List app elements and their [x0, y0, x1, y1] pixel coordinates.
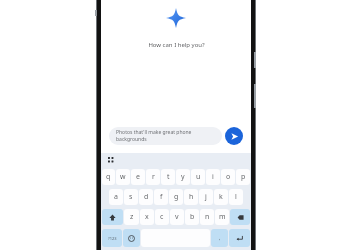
staticText: e	[136, 172, 140, 182]
button[interactable]: Keyboard tools	[106, 155, 117, 166]
staticText: x	[145, 212, 149, 222]
button[interactable]: b	[185, 209, 199, 225]
staticText: o	[226, 172, 231, 182]
staticText: z	[130, 212, 134, 222]
button[interactable]: ?123	[102, 229, 122, 247]
staticText: m	[219, 212, 226, 222]
staticText: ,	[219, 235, 221, 242]
button[interactable]: r	[146, 169, 160, 185]
staticText: s	[129, 192, 133, 202]
button[interactable]: Photos that'll make great phone backgrou…	[109, 127, 222, 145]
staticText: d	[144, 192, 149, 202]
button[interactable]: Shift	[102, 209, 123, 225]
button[interactable]: p	[236, 169, 250, 185]
button[interactable]: i	[206, 169, 220, 185]
staticText: h	[189, 192, 194, 202]
staticText: y	[181, 172, 185, 182]
button[interactable]: Emoji	[123, 229, 140, 247]
button[interactable]: g	[169, 189, 183, 205]
button[interactable]: n	[200, 209, 214, 225]
staticText: j	[205, 192, 207, 202]
staticText: b	[190, 212, 195, 222]
button[interactable]: e	[131, 169, 145, 185]
button[interactable]: f	[154, 189, 168, 205]
staticText: n	[205, 212, 210, 222]
button[interactable]: d	[139, 189, 153, 205]
staticText: u	[196, 172, 201, 182]
staticText: v	[175, 212, 179, 222]
staticText: p	[241, 172, 246, 182]
button[interactable]: z	[124, 209, 139, 225]
button[interactable]: l	[229, 189, 243, 205]
button[interactable]: s	[124, 189, 138, 205]
staticText: g	[174, 192, 179, 202]
staticText: w	[120, 172, 126, 182]
button[interactable]: k	[214, 189, 228, 205]
button[interactable]: c	[155, 209, 169, 225]
staticText: f	[160, 192, 163, 202]
staticText: k	[219, 192, 223, 202]
button[interactable]: j	[199, 189, 213, 205]
staticText: q	[106, 172, 111, 182]
button[interactable]: a	[109, 189, 123, 205]
button[interactable]: t	[161, 169, 175, 185]
button[interactable]: Send	[225, 127, 243, 145]
staticText: r	[152, 172, 155, 182]
button[interactable]: v	[170, 209, 184, 225]
staticText: a	[114, 192, 118, 202]
button[interactable]: u	[191, 169, 205, 185]
staticText: l	[235, 192, 237, 202]
staticText: t	[167, 172, 170, 182]
staticText: i	[212, 172, 214, 182]
button[interactable]: m	[215, 209, 229, 225]
button[interactable]: y	[176, 169, 190, 185]
staticText: Photos that'll make great phone backgrou…	[116, 129, 215, 143]
button[interactable]: Backspace	[230, 209, 250, 225]
button[interactable]: x	[140, 209, 154, 225]
button[interactable]: h	[184, 189, 198, 205]
button[interactable]: o	[221, 169, 235, 185]
button[interactable]: Enter	[229, 229, 250, 247]
button[interactable]: q	[102, 169, 115, 185]
button[interactable]: ,	[211, 229, 228, 247]
staticText: ?123	[108, 236, 117, 241]
button[interactable]: w	[116, 169, 130, 185]
staticText: c	[160, 212, 164, 222]
staticText: How can I help you?	[148, 41, 205, 49]
